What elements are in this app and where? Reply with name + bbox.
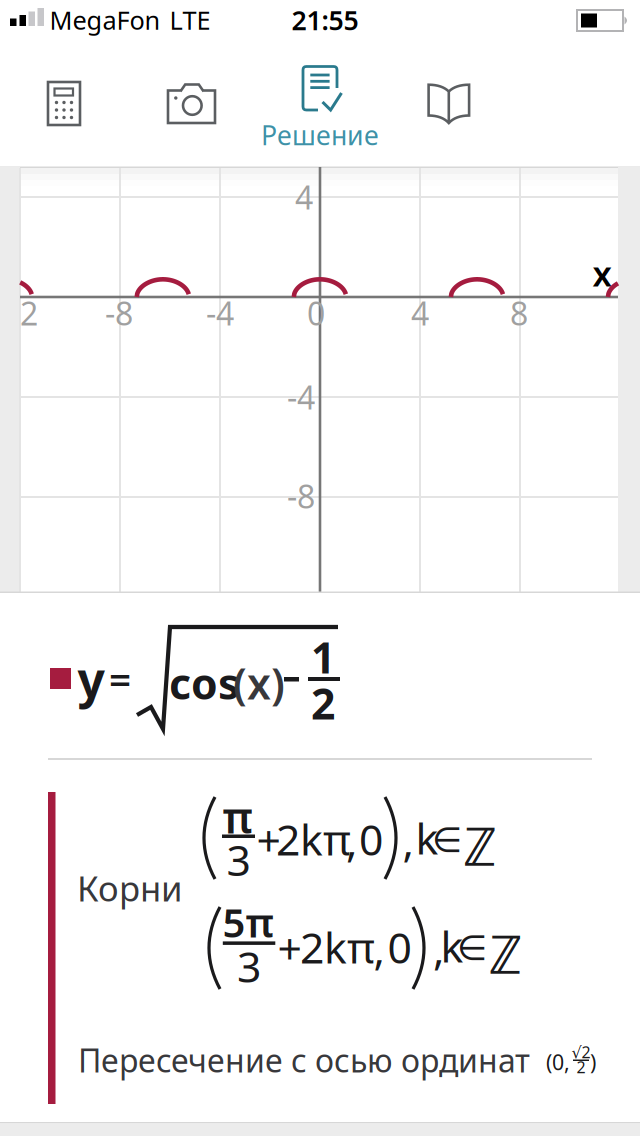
staticText: π <box>222 789 252 845</box>
staticText: ∈ <box>457 928 487 968</box>
staticText: 0 <box>359 811 383 867</box>
staticText: k <box>440 918 463 974</box>
staticText: 2 <box>20 292 38 334</box>
staticText: + <box>277 920 301 976</box>
staticText: 4 <box>295 176 313 218</box>
staticText: (x) <box>233 655 285 711</box>
staticText: , <box>346 813 357 869</box>
staticText: = <box>109 653 131 705</box>
staticText: 2kπ <box>300 919 375 975</box>
staticText: 3 <box>237 938 261 994</box>
staticText: 2kπ <box>276 811 351 867</box>
staticText: k <box>415 810 438 866</box>
staticText: , <box>373 921 384 977</box>
staticText: ∈ <box>432 820 462 860</box>
staticText: 21:55 <box>291 2 358 38</box>
staticText: Пересечение с осью ординат <box>78 1039 530 1081</box>
staticText: x <box>592 250 611 296</box>
staticText: -4 <box>206 292 234 334</box>
button[interactable]: Калькулятор <box>0 40 128 160</box>
staticText: Корни <box>77 865 183 911</box>
staticText: 2 <box>576 1056 585 1078</box>
staticText: , <box>433 921 444 977</box>
staticText: 1 <box>311 629 335 685</box>
staticText: MegaFon <box>49 3 160 37</box>
staticText: 5π <box>222 895 273 948</box>
staticText: -8 <box>105 292 133 334</box>
staticText: 8 <box>510 292 528 334</box>
staticText: + <box>256 812 280 868</box>
staticText: √2 <box>571 1041 590 1063</box>
staticText: 0 <box>307 292 325 334</box>
staticText: -8 <box>287 475 315 517</box>
button[interactable]: Учебники <box>384 40 512 160</box>
staticText: ) <box>590 1048 596 1076</box>
staticText: ℤ <box>463 810 497 880</box>
staticText: 2 <box>311 675 335 731</box>
button[interactable]: Решение <box>256 40 384 160</box>
staticText: , <box>402 813 413 869</box>
staticText: -4 <box>287 376 315 418</box>
staticText: cos <box>169 655 239 711</box>
staticText: LTE <box>169 3 210 37</box>
staticText: 0 <box>387 919 411 975</box>
staticText: 3 <box>226 831 250 888</box>
staticText: ℤ <box>488 918 522 988</box>
staticText: y <box>77 647 104 711</box>
staticText: Решение <box>261 117 379 153</box>
staticText: (0, <box>546 1048 570 1076</box>
button[interactable]: Камера <box>128 40 256 160</box>
staticText: 4 <box>411 292 429 334</box>
